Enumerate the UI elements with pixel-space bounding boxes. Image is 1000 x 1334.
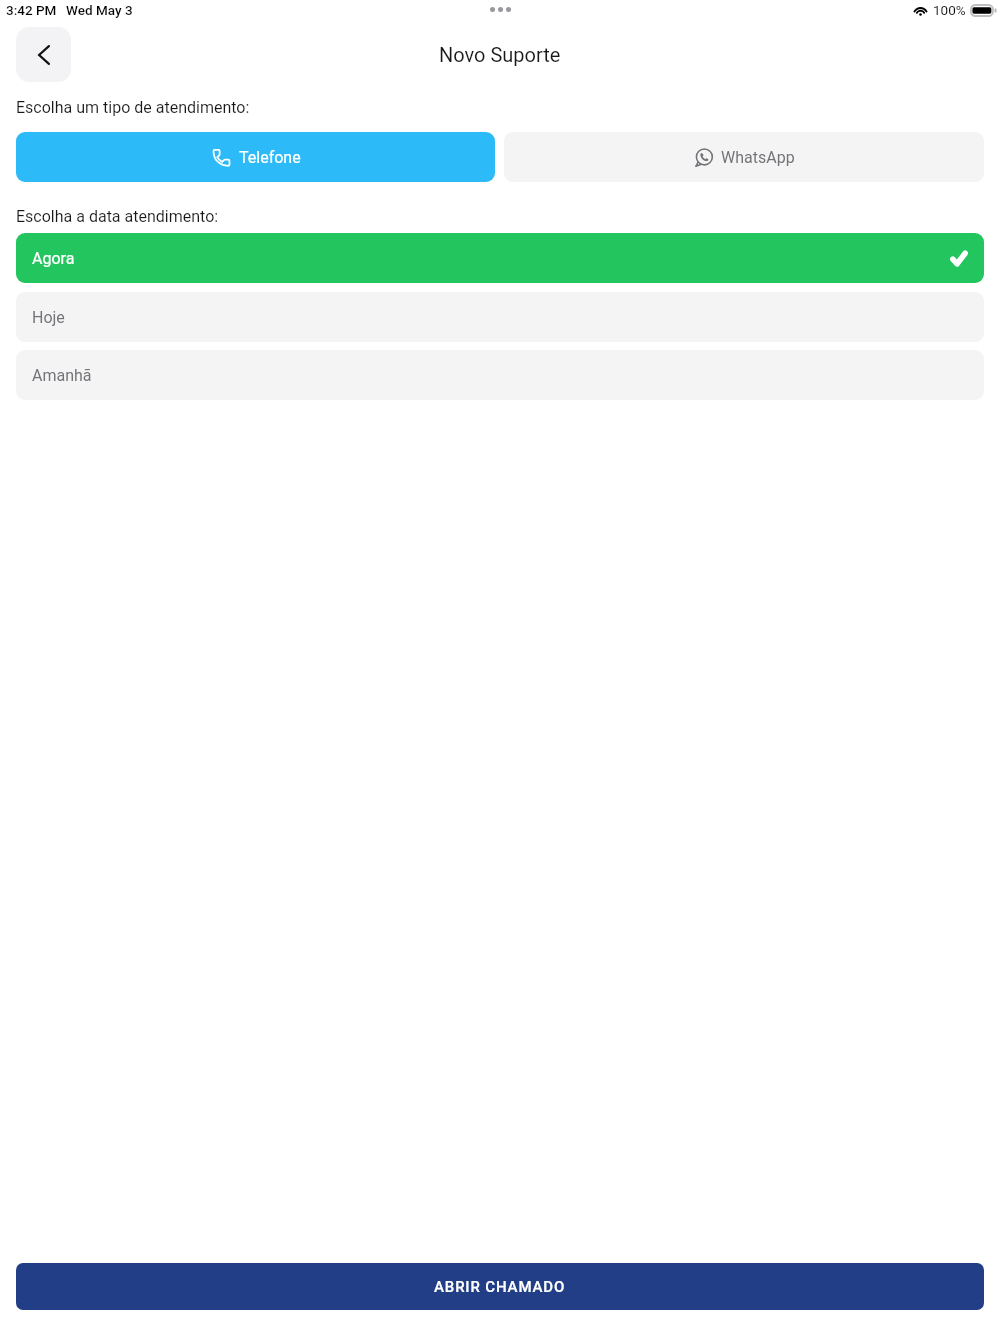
staticText: Escolha a data atendimento: xyxy=(16,207,219,226)
staticText: Novo Suporte xyxy=(439,43,561,66)
staticText: Telefone xyxy=(239,148,301,167)
button[interactable]: Agora xyxy=(16,233,984,283)
button[interactable]: Telefone xyxy=(16,132,495,182)
staticText: Amanhã xyxy=(32,366,92,385)
staticText: Wed May 3 xyxy=(66,2,133,18)
staticText: Hoje xyxy=(32,308,65,327)
button[interactable]: Amanhã xyxy=(16,350,984,400)
staticText: 3:42 PM xyxy=(6,2,57,18)
staticText: Agora xyxy=(32,249,75,268)
other: Selected xyxy=(950,251,968,266)
button[interactable]: ABRIR CHAMADO xyxy=(16,1263,984,1310)
staticText: WhatsApp xyxy=(721,148,795,167)
staticText: Escolha um tipo de atendimento: xyxy=(16,98,250,117)
button[interactable]: Hoje xyxy=(16,292,984,342)
staticText: 100% xyxy=(933,2,966,18)
staticText: ABRIR CHAMADO xyxy=(434,1278,566,1296)
button[interactable]: WhatsApp xyxy=(504,132,984,182)
button[interactable]: Back xyxy=(16,27,71,82)
